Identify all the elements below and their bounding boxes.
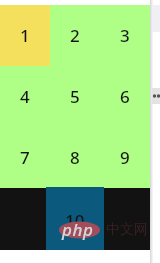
button[interactable]: More options xyxy=(152,88,160,104)
button[interactable]: 10 xyxy=(46,187,104,250)
staticText: 7 xyxy=(20,146,30,169)
button[interactable]: 2 xyxy=(50,5,100,66)
button[interactable]: 3 xyxy=(100,5,150,66)
button[interactable]: 4 xyxy=(0,66,50,127)
staticText: 6 xyxy=(120,85,130,108)
button[interactable]: 6 xyxy=(100,66,150,127)
staticText: 10 xyxy=(65,209,85,232)
button[interactable]: 7 xyxy=(0,127,50,188)
button[interactable]: 5 xyxy=(50,66,100,127)
staticText: 5 xyxy=(70,85,80,108)
button[interactable]: 1 xyxy=(0,5,50,66)
staticText: 4 xyxy=(20,85,30,108)
staticText: 3 xyxy=(120,24,130,47)
staticText: php xyxy=(62,218,94,241)
button[interactable]: 9 xyxy=(100,127,150,188)
staticText: 9 xyxy=(120,146,130,169)
staticText: 2 xyxy=(70,24,80,47)
staticText: 8 xyxy=(70,146,80,169)
staticText: 1 xyxy=(20,24,30,47)
staticText: 中文网 xyxy=(106,221,148,239)
button[interactable]: 8 xyxy=(50,127,100,188)
